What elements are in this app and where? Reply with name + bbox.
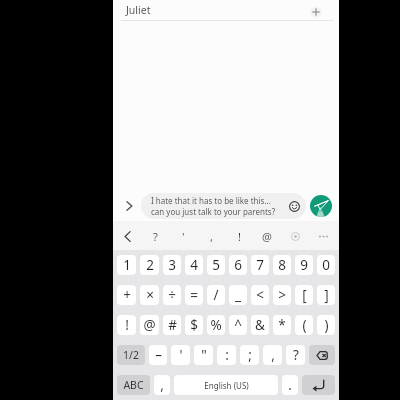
staticText: 8: [278, 256, 286, 274]
button[interactable]: 1/2: [117, 345, 145, 365]
staticText: (: [302, 316, 307, 334]
button[interactable]: ,: [263, 345, 282, 365]
button[interactable]: $: [185, 315, 203, 335]
button[interactable]: ABC: [117, 375, 150, 395]
button[interactable]: 7: [251, 255, 269, 275]
staticText: ÷: [168, 286, 176, 304]
button[interactable]: @: [140, 315, 159, 335]
button[interactable]: Send: [310, 195, 332, 217]
staticText: ': [179, 346, 183, 364]
button[interactable]: ': [171, 345, 190, 365]
button[interactable]: ,: [201, 226, 221, 246]
button[interactable]: –: [149, 345, 167, 365]
button[interactable]: ;: [240, 345, 259, 365]
button[interactable]: <: [251, 285, 269, 305]
staticText: ×: [146, 286, 154, 304]
button[interactable]: Enter: [302, 375, 335, 395]
staticText: 7: [256, 256, 264, 274]
button[interactable]: :: [217, 345, 236, 365]
button[interactable]: 9: [295, 255, 313, 275]
staticText: 1: [123, 256, 131, 274]
staticText: I hate that it has to be like this...: [151, 195, 271, 206]
button[interactable]: 4: [185, 255, 203, 275]
button[interactable]: #: [163, 315, 181, 335]
button[interactable]: (: [295, 315, 313, 335]
staticText: English (US): [204, 380, 249, 391]
button[interactable]: Backspace: [309, 345, 335, 365]
staticText: .: [288, 376, 292, 394]
staticText: <: [256, 286, 264, 304]
button[interactable]: ?: [286, 345, 305, 365]
button[interactable]: _: [229, 285, 247, 305]
staticText: 2: [146, 256, 154, 274]
button[interactable]: ': [173, 226, 193, 246]
button[interactable]: [: [295, 285, 313, 305]
staticText: @: [262, 229, 272, 244]
button[interactable]: ×: [140, 285, 159, 305]
staticText: 6: [234, 256, 242, 274]
button[interactable]: 2: [140, 255, 159, 275]
staticText: ': [182, 229, 185, 244]
staticText: ?: [153, 229, 158, 244]
button[interactable]: ): [317, 315, 335, 335]
button[interactable]: ^: [229, 315, 247, 335]
button[interactable]: .: [282, 375, 298, 395]
button[interactable]: >: [273, 285, 291, 305]
staticText: –: [155, 346, 162, 364]
staticText: @: [143, 316, 156, 334]
button[interactable]: English (US): [174, 375, 278, 395]
staticText: ABC: [123, 378, 144, 392]
staticText: :: [225, 346, 229, 364]
staticText: can you just talk to your parents?: [151, 206, 276, 217]
button[interactable]: Expand: [119, 196, 139, 216]
staticText: 4: [190, 256, 198, 274]
staticText: ": [201, 346, 207, 364]
staticText: =: [190, 286, 198, 304]
staticText: $: [190, 316, 198, 334]
staticText: #: [168, 316, 177, 334]
button[interactable]: ÷: [163, 285, 181, 305]
staticText: &: [255, 316, 265, 334]
button[interactable]: 6: [229, 255, 247, 275]
button[interactable]: !: [117, 315, 136, 335]
button[interactable]: =: [185, 285, 203, 305]
button[interactable]: 1: [117, 255, 136, 275]
staticText: Juliet: [126, 3, 151, 17]
staticText: 0: [322, 256, 330, 274]
button[interactable]: 8: [273, 255, 291, 275]
button[interactable]: ,: [154, 375, 170, 395]
button[interactable]: 5: [207, 255, 225, 275]
staticText: ?: [293, 346, 299, 364]
button[interactable]: 3: [163, 255, 181, 275]
button[interactable]: &: [251, 315, 269, 335]
button[interactable]: 0: [317, 255, 335, 275]
staticText: >: [278, 286, 286, 304]
staticText: 3: [168, 256, 176, 274]
button[interactable]: I hate that it has to be like this...: [141, 193, 306, 219]
button[interactable]: *: [273, 315, 291, 335]
button[interactable]: ]: [317, 285, 335, 305]
staticText: ,: [210, 229, 213, 244]
staticText: ]: [324, 286, 329, 304]
button[interactable]: %: [207, 315, 225, 335]
staticText: 5: [212, 256, 220, 274]
staticText: ;: [248, 346, 252, 364]
button[interactable]: +: [117, 285, 136, 305]
button[interactable]: Back: [117, 226, 137, 246]
staticText: ,: [160, 376, 164, 394]
staticText: +: [123, 286, 131, 304]
button[interactable]: /: [207, 285, 225, 305]
staticText: [: [302, 286, 307, 304]
staticText: 9: [300, 256, 308, 274]
button[interactable]: ?: [145, 226, 165, 246]
button[interactable]: ": [194, 345, 213, 365]
button[interactable]: Settings: [285, 226, 305, 246]
staticText: _: [235, 286, 241, 304]
button[interactable]: More options: [313, 226, 333, 246]
button[interactable]: @: [257, 226, 277, 246]
button[interactable]: !: [229, 226, 249, 246]
staticText: !: [125, 316, 129, 334]
button[interactable]: Add: [308, 4, 324, 20]
staticText: 1/2: [123, 348, 139, 362]
staticText: ): [324, 316, 329, 334]
